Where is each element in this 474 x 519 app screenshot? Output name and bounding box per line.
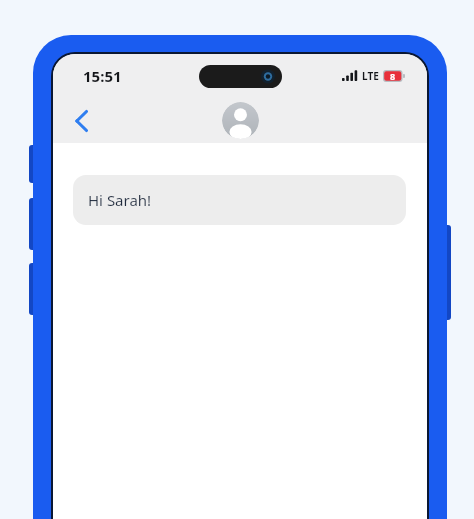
button[interactable]: Contact profile bbox=[222, 102, 259, 139]
button[interactable]: Hi Sarah! bbox=[73, 175, 406, 225]
staticText: 15:51 bbox=[83, 66, 122, 86]
staticText: Hi Sarah! bbox=[88, 190, 152, 210]
staticText: 8 bbox=[390, 70, 396, 82]
staticText: LTE bbox=[362, 69, 379, 83]
button[interactable]: Back bbox=[61, 101, 101, 141]
